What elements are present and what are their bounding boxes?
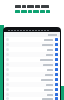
other: Open item xyxy=(55,53,58,56)
button[interactable]: Open item xyxy=(4,87,60,92)
button[interactable]: Open item xyxy=(4,42,60,47)
other: Open item xyxy=(55,73,58,76)
other: Open item xyxy=(55,38,58,41)
button[interactable]: Open item xyxy=(4,67,60,72)
other: Open item xyxy=(55,63,58,66)
other: Open item xyxy=(55,58,58,61)
button[interactable]: Open item xyxy=(4,72,60,77)
other: Open item xyxy=(55,93,58,96)
button[interactable]: Open item xyxy=(4,82,60,87)
button[interactable]: Open item xyxy=(4,57,60,62)
button[interactable]: Open item xyxy=(4,52,60,57)
other: Open item xyxy=(55,78,58,81)
other: Open item xyxy=(55,68,58,71)
other: Open item xyxy=(55,97,58,100)
button[interactable]: Open item xyxy=(4,92,60,97)
button[interactable]: Open item xyxy=(4,37,60,42)
other: Open item xyxy=(55,88,58,91)
button[interactable]: Open item xyxy=(4,97,60,100)
button[interactable]: Open item xyxy=(4,62,60,67)
other: Open item xyxy=(55,48,58,51)
button[interactable]: Open item xyxy=(4,47,60,52)
button[interactable]: Open item xyxy=(4,77,60,82)
other: Open item xyxy=(55,83,58,86)
other: Open item xyxy=(55,43,58,46)
